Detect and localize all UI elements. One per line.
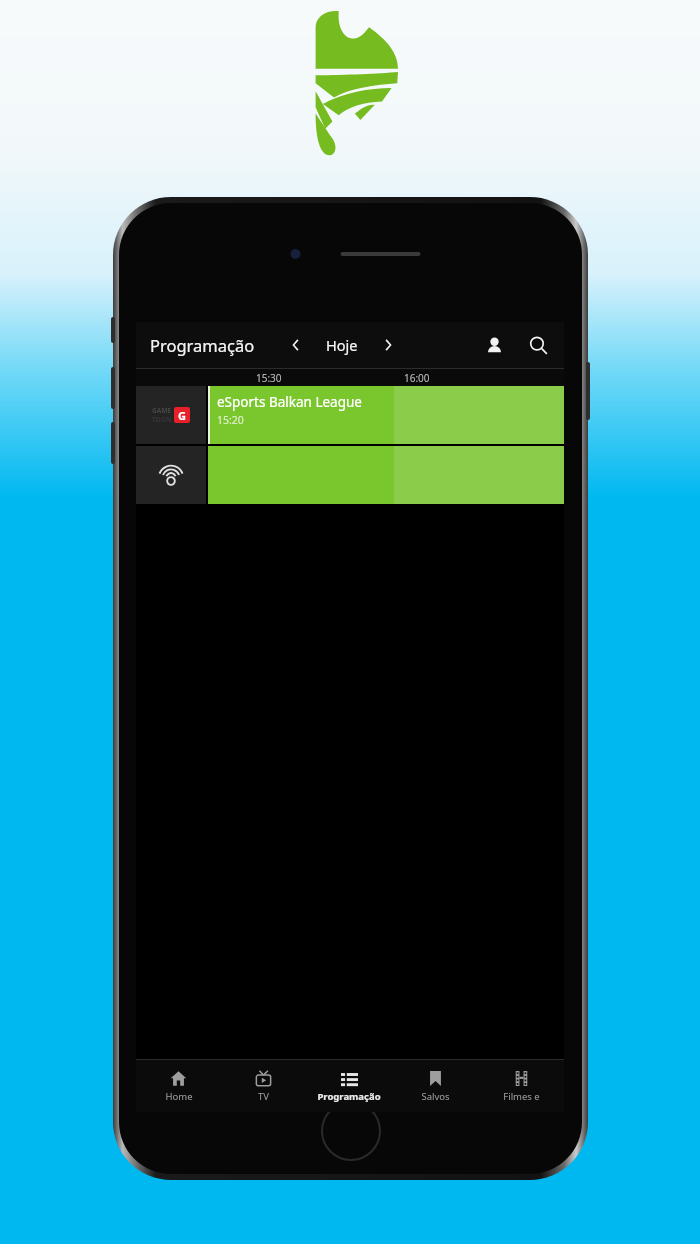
- button[interactable]: eSports Balkan League: [208, 386, 394, 444]
- button[interactable]: Dia anterior: [281, 330, 311, 360]
- staticText: TV: [258, 1090, 269, 1103]
- button[interactable]: TV: [221, 1060, 306, 1112]
- staticText: 16:00: [404, 371, 430, 385]
- button[interactable]: Filmes e: [478, 1060, 564, 1112]
- staticText: Salvos: [421, 1090, 450, 1103]
- staticText: eSports Balkan League: [217, 393, 362, 411]
- staticText: TOON: [152, 415, 172, 424]
- staticText: 15:30: [256, 371, 282, 385]
- staticText: GAME: [152, 406, 171, 415]
- button[interactable]: Próximo dia: [373, 330, 403, 360]
- button[interactable]: Salvos: [392, 1060, 478, 1112]
- button[interactable]: [136, 446, 206, 504]
- button[interactable]: Home: [136, 1060, 221, 1112]
- button[interactable]: Programação: [306, 1060, 392, 1112]
- button[interactable]: Hoje: [311, 325, 373, 365]
- button[interactable]: Buscar: [516, 323, 560, 367]
- button[interactable]: GAME: [136, 386, 206, 444]
- staticText: 15:20: [217, 413, 244, 427]
- staticText: Filmes e: [503, 1090, 540, 1103]
- staticText: Home: [165, 1090, 193, 1103]
- button[interactable]: Conta: [472, 323, 516, 367]
- staticText: Programação: [150, 334, 255, 356]
- staticText: Hoje: [326, 335, 358, 355]
- staticText: G: [178, 408, 186, 423]
- staticText: Programação: [317, 1090, 381, 1103]
